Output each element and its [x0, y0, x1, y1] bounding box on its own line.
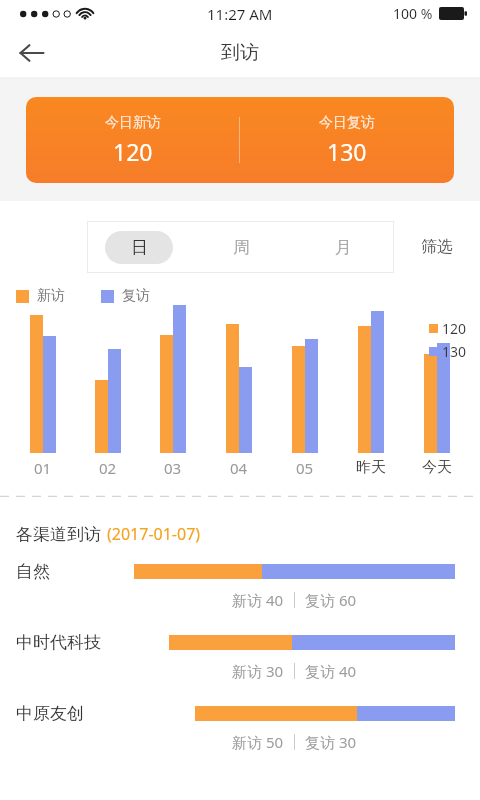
- button[interactable]: 今日新访: [26, 97, 454, 183]
- staticText: 今日新访: [105, 114, 161, 132]
- staticText: 月: [335, 237, 352, 258]
- staticText: 新访 30: [232, 661, 284, 681]
- staticText: 新访: [37, 287, 65, 305]
- staticText: (2017-01-07): [107, 523, 201, 545]
- staticText: 03: [164, 458, 182, 478]
- button[interactable]: 月: [292, 221, 394, 273]
- staticText: 复访: [122, 287, 150, 305]
- staticText: 130: [327, 136, 367, 167]
- staticText: 复访 40: [305, 661, 357, 681]
- staticText: 日: [131, 237, 148, 258]
- button[interactable]: 周: [190, 221, 292, 273]
- staticText: 周: [233, 237, 250, 258]
- staticText: 100 %: [393, 4, 433, 23]
- button[interactable]: 筛选: [394, 221, 480, 273]
- staticText: 自然: [16, 561, 50, 582]
- staticText: 中时代科技: [16, 632, 101, 653]
- staticText: 昨天: [356, 458, 386, 477]
- staticText: 各渠道到访: [16, 524, 101, 545]
- staticText: 05: [296, 458, 314, 478]
- staticText: 04: [230, 458, 248, 478]
- button[interactable]: 中原友创: [0, 703, 480, 774]
- staticText: 120: [113, 136, 153, 167]
- staticText: 筛选: [421, 237, 453, 257]
- staticText: 今天: [422, 458, 452, 477]
- staticText: 中原友创: [16, 703, 84, 724]
- button[interactable]: 日: [87, 221, 190, 273]
- staticText: 新访 50: [232, 732, 284, 752]
- staticText: 01: [34, 458, 52, 478]
- staticText: 02: [99, 458, 117, 478]
- staticText: 复访 30: [305, 732, 357, 752]
- staticText: 复访 60: [305, 590, 357, 610]
- staticText: 11:27 AM: [207, 4, 273, 24]
- staticText: 今日复访: [319, 114, 375, 132]
- staticText: 130: [442, 342, 467, 361]
- button[interactable]: Back: [8, 29, 56, 77]
- staticText: 到访: [221, 41, 259, 65]
- button[interactable]: 自然: [0, 561, 480, 632]
- button[interactable]: 中时代科技: [0, 632, 480, 703]
- staticText: 新访 40: [232, 590, 284, 610]
- staticText: 120: [442, 319, 467, 338]
